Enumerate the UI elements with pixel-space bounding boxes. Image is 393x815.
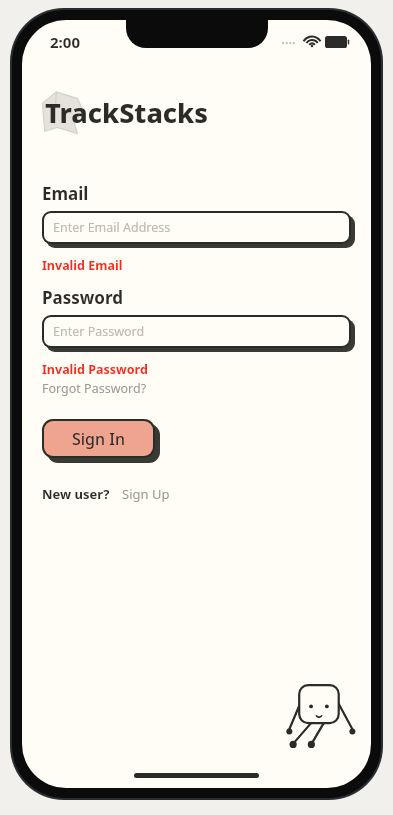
button[interactable]: Forgot Password? [42, 380, 147, 397]
button[interactable]: Enter Email Address [42, 211, 351, 244]
staticText: Forgot Password? [42, 380, 147, 397]
staticText: TrackStacks [45, 94, 209, 131]
staticText: Password [42, 286, 123, 309]
staticText: Enter Email Address [53, 219, 171, 236]
other: App mascot [284, 676, 360, 752]
staticText: 2:00 [50, 32, 80, 52]
button[interactable]: Sign Up [122, 485, 170, 503]
staticText: Invalid Email [42, 257, 123, 274]
staticText: Invalid Password [42, 361, 148, 378]
button[interactable]: Sign In [42, 419, 155, 458]
staticText: Email [42, 182, 89, 205]
staticText: Enter Password [53, 323, 145, 340]
staticText: New user? [42, 485, 110, 503]
staticText: Sign In [72, 428, 125, 450]
staticText: Sign Up [122, 485, 170, 503]
button[interactable]: Enter Password [42, 315, 351, 348]
